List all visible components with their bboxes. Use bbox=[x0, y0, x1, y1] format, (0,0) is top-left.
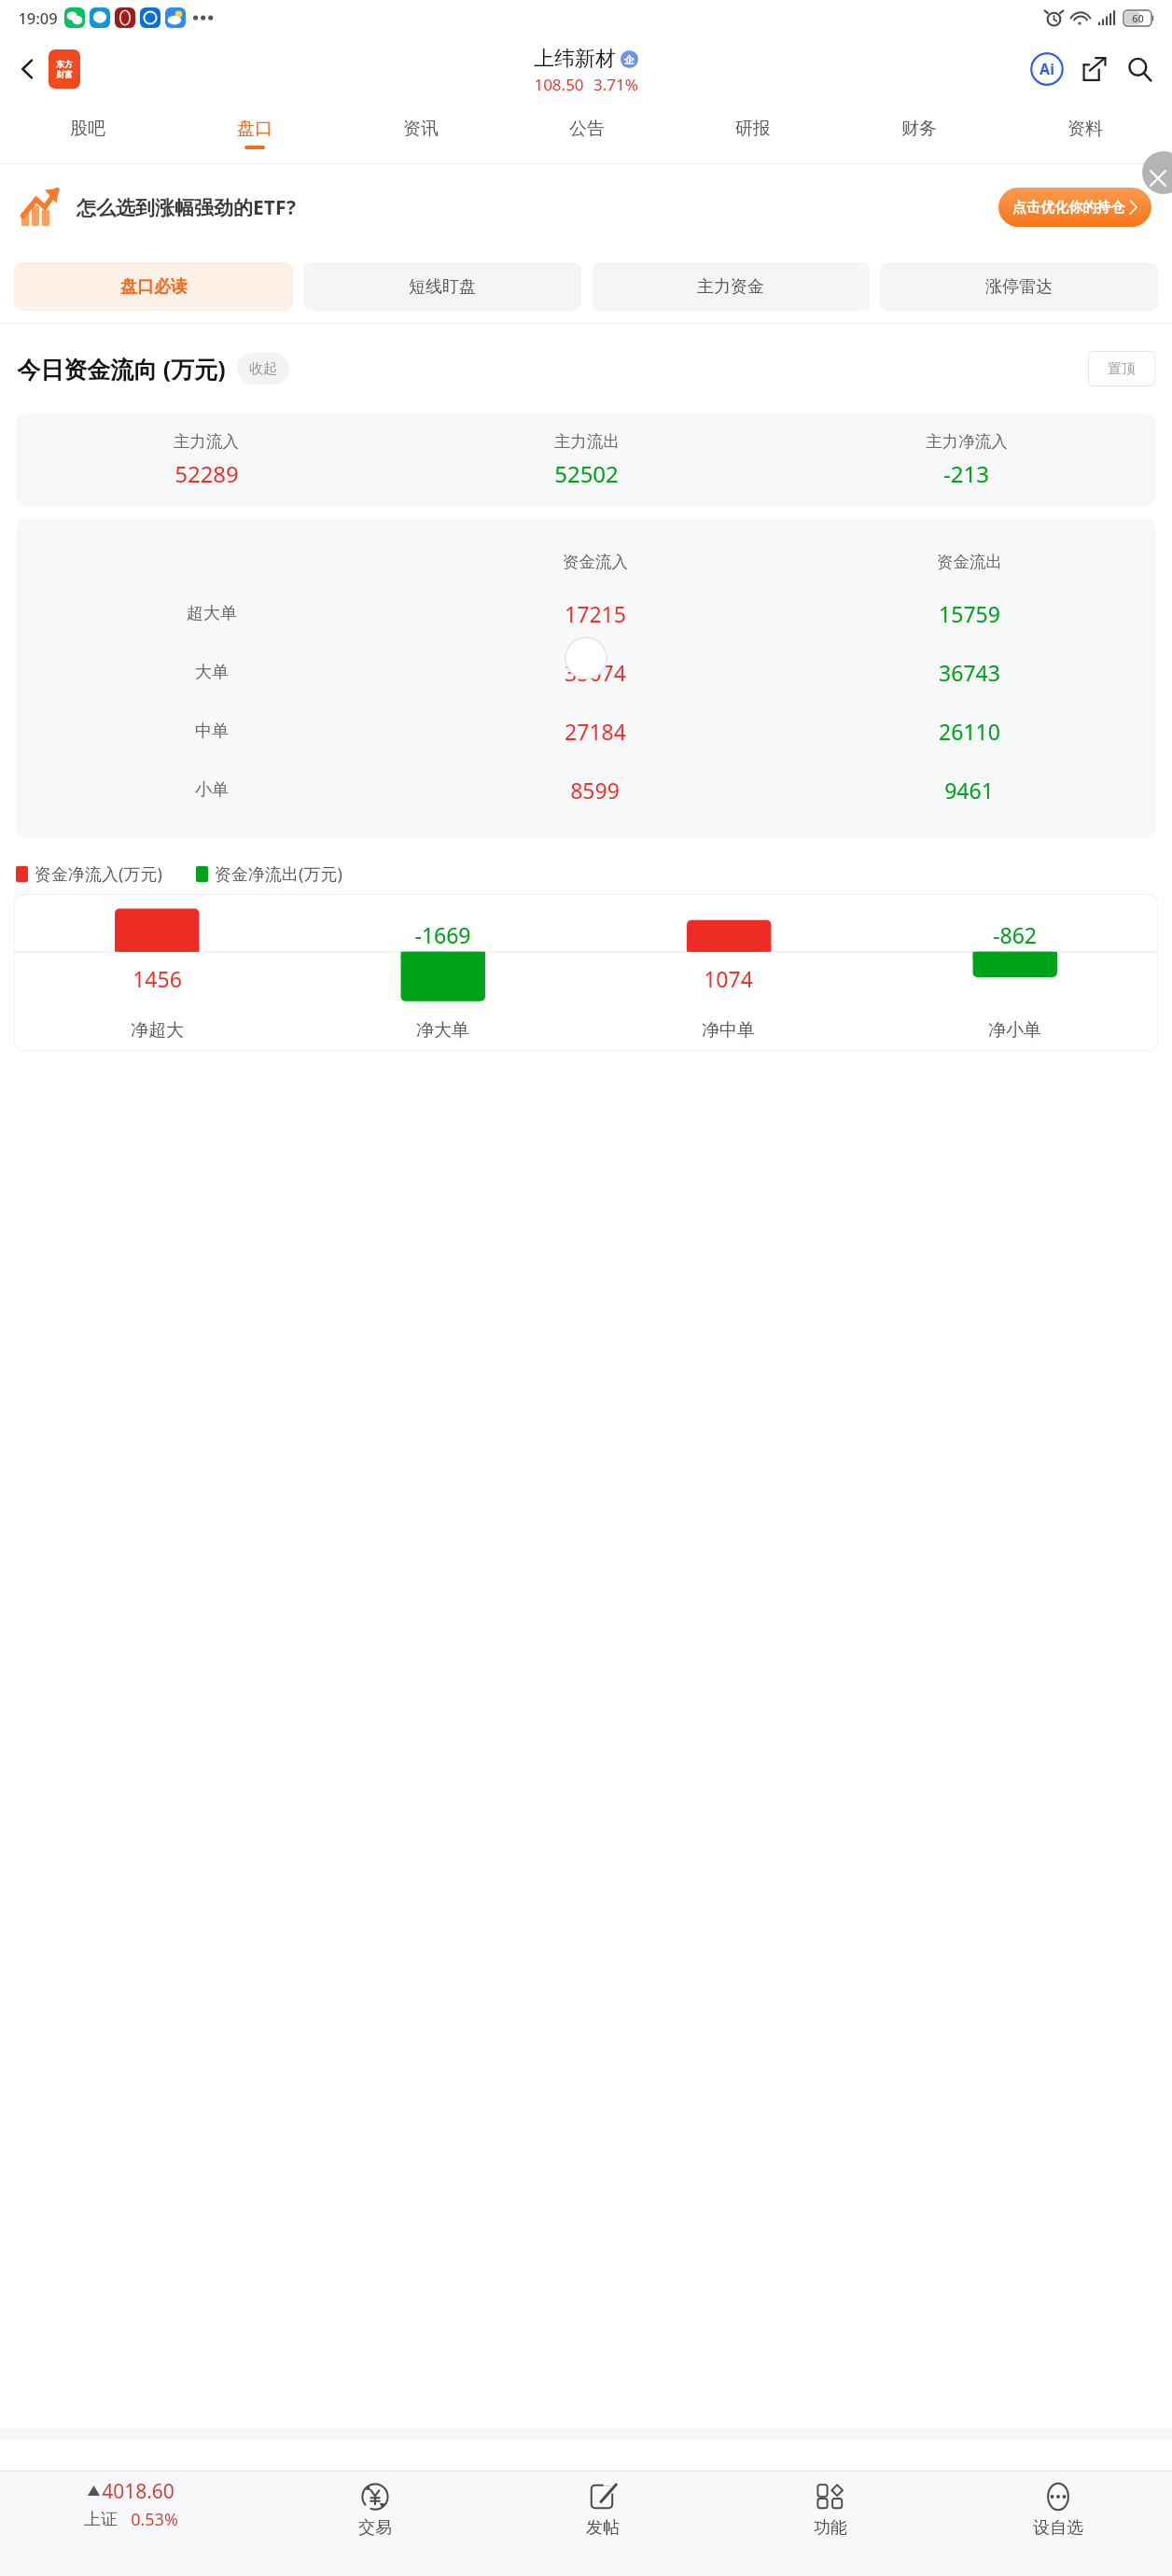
staticText: 27184 bbox=[565, 717, 626, 746]
staticText: 36743 bbox=[939, 658, 1000, 687]
staticText: 大单 bbox=[195, 662, 229, 683]
button[interactable]: 盘口必读 bbox=[14, 262, 293, 311]
staticText: 9461 bbox=[944, 776, 994, 805]
staticText: 公告 bbox=[569, 118, 605, 140]
staticText: 资料 bbox=[1067, 118, 1103, 140]
button[interactable]: 资讯 bbox=[338, 104, 504, 163]
staticText: Ai bbox=[1039, 59, 1054, 79]
staticText: 15759 bbox=[939, 599, 1000, 628]
staticText: 涨停雷达 bbox=[985, 276, 1053, 298]
button[interactable]: 财务 bbox=[836, 104, 1002, 163]
button[interactable]: Close ad bbox=[1142, 151, 1172, 194]
button[interactable]: Share bbox=[1073, 49, 1114, 90]
staticText: 资讯 bbox=[403, 118, 439, 140]
staticText: 中单 bbox=[195, 721, 229, 742]
staticText: -1669 bbox=[414, 920, 471, 949]
staticText: 置顶 bbox=[1108, 360, 1136, 378]
staticText: 17215 bbox=[565, 599, 626, 628]
staticText: 短线盯盘 bbox=[409, 276, 476, 298]
staticText: 财务 bbox=[901, 118, 937, 140]
button[interactable]: 发帖 bbox=[489, 2471, 717, 2576]
staticText: 主力流出 bbox=[554, 431, 620, 452]
staticText: 60 bbox=[1132, 11, 1144, 25]
staticText: 主力净流入 bbox=[926, 431, 1008, 452]
staticText: 小单 bbox=[195, 779, 229, 801]
staticText: 财富 bbox=[56, 69, 73, 79]
staticText: 上纬新材 bbox=[534, 46, 616, 72]
staticText: 超大单 bbox=[187, 603, 237, 624]
button[interactable]: 点击优化你的持仓 bbox=[998, 188, 1151, 227]
button[interactable]: 收起 bbox=[237, 353, 289, 385]
button[interactable]: 涨停雷达 bbox=[880, 262, 1158, 311]
button[interactable]: 置顶 bbox=[1088, 351, 1155, 386]
staticText: 52289 bbox=[174, 458, 239, 489]
staticText: 0.53% bbox=[131, 2508, 178, 2531]
staticText: 26110 bbox=[939, 717, 1000, 746]
staticText: 研报 bbox=[735, 118, 771, 140]
staticText: 净中单 bbox=[702, 1019, 755, 1042]
staticText: 资金流出 bbox=[937, 552, 1002, 572]
button[interactable]: 短线盯盘 bbox=[303, 262, 581, 311]
staticText: 主力资金 bbox=[697, 276, 764, 298]
staticText: 1074 bbox=[704, 964, 753, 993]
staticText: 资金净流出(万元) bbox=[215, 862, 342, 886]
button[interactable]: Search bbox=[1118, 48, 1161, 91]
staticText: 怎么选到涨幅强劲的ETF? bbox=[77, 194, 296, 221]
button[interactable]: 盘口 bbox=[171, 104, 338, 163]
button[interactable]: 功能 bbox=[717, 2471, 944, 2576]
button[interactable]: 公告 bbox=[504, 104, 670, 163]
staticText: 净大单 bbox=[416, 1019, 469, 1042]
staticText: 点击优化你的持仓 bbox=[1012, 199, 1124, 217]
staticText: 108.50 bbox=[534, 74, 584, 95]
staticText: 净超大 bbox=[131, 1019, 184, 1042]
button[interactable]: 股吧 bbox=[4, 104, 171, 163]
staticText: 主力流入 bbox=[174, 431, 239, 452]
staticText: 3.71% bbox=[593, 74, 638, 95]
staticText: 35074 bbox=[565, 658, 626, 687]
button[interactable]: 东方财富 bbox=[49, 49, 80, 89]
staticText: 盘口 bbox=[237, 118, 272, 140]
staticText: 净小单 bbox=[988, 1019, 1041, 1042]
staticText: 发帖 bbox=[586, 2517, 620, 2539]
staticText: 收起 bbox=[249, 360, 277, 378]
button[interactable]: 主力资金 bbox=[592, 262, 870, 311]
staticText: -862 bbox=[993, 920, 1037, 949]
staticText: 1456 bbox=[133, 964, 182, 993]
staticText: 上证 bbox=[84, 2509, 118, 2530]
staticText: 52502 bbox=[554, 458, 619, 489]
staticText: 东方 bbox=[56, 59, 73, 69]
staticText: 企 bbox=[624, 53, 635, 66]
button[interactable]: 设自选 bbox=[944, 2471, 1172, 2576]
staticText: 4018.60 bbox=[102, 2478, 174, 2505]
staticText: 设自选 bbox=[1033, 2517, 1083, 2539]
staticText: 8599 bbox=[570, 776, 620, 805]
button[interactable]: 怎么选到涨幅强劲的ETF? bbox=[0, 164, 1172, 250]
staticText: 19:09 bbox=[18, 7, 58, 28]
button[interactable]: Back bbox=[7, 49, 49, 90]
staticText: 资金净流入(万元) bbox=[35, 862, 162, 886]
staticText: 股吧 bbox=[70, 118, 105, 140]
button[interactable]: 资料 bbox=[1002, 104, 1168, 163]
button[interactable]: AI bbox=[1026, 49, 1067, 90]
button[interactable]: 交易 bbox=[261, 2471, 489, 2576]
button[interactable]: 4018.60 bbox=[0, 2471, 261, 2576]
staticText: 资金流入 bbox=[563, 552, 628, 572]
button[interactable]: 研报 bbox=[670, 104, 836, 163]
staticText: 交易 bbox=[358, 2517, 392, 2539]
staticText: 功能 bbox=[814, 2517, 847, 2539]
staticText: 盘口必读 bbox=[120, 276, 188, 298]
staticText: -213 bbox=[943, 458, 989, 489]
staticText: 今日资金流向 (万元) bbox=[17, 353, 226, 385]
